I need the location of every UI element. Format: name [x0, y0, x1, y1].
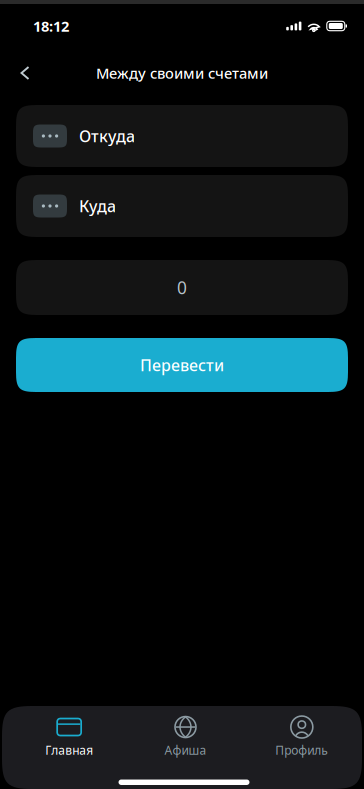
- button[interactable]: Откуда: [16, 105, 348, 167]
- button[interactable]: Back: [0, 54, 50, 92]
- staticText: Главная: [45, 742, 93, 758]
- button[interactable]: 0: [16, 260, 348, 315]
- staticText: Профиль: [275, 742, 328, 758]
- staticText: Куда: [79, 195, 116, 217]
- button[interactable]: Афиша: [127, 712, 244, 762]
- button[interactable]: Главная: [11, 712, 127, 762]
- staticText: 18:12: [33, 16, 69, 36]
- staticText: Между своими счетами: [96, 63, 268, 83]
- staticText: Перевести: [140, 354, 224, 376]
- button[interactable]: Профиль: [244, 712, 360, 762]
- button[interactable]: Перевести: [16, 338, 348, 392]
- staticText: Откуда: [79, 125, 135, 147]
- button[interactable]: Куда: [16, 175, 348, 237]
- staticText: Афиша: [164, 742, 206, 758]
- staticText: 0: [177, 276, 187, 299]
